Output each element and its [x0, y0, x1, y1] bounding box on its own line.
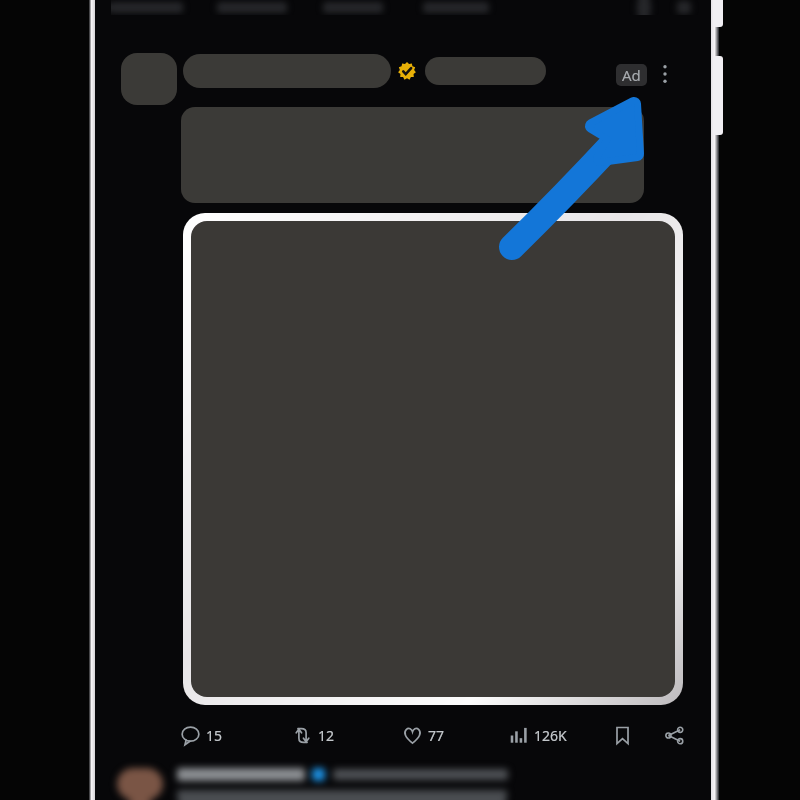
button[interactable]: Share [659, 720, 689, 750]
button[interactable]: Media image [191, 221, 675, 697]
button[interactable]: Profile photo [121, 53, 177, 105]
staticText: 12 [318, 726, 335, 745]
button[interactable]: More options [650, 59, 680, 89]
button[interactable]: 12 [293, 722, 335, 749]
button[interactable]: Ad [616, 64, 647, 86]
button[interactable]: 15 [181, 722, 223, 749]
staticText: 126K [534, 726, 567, 745]
staticText: 15 [206, 726, 223, 745]
staticText: 77 [428, 726, 445, 745]
button[interactable]: 77 [403, 722, 445, 749]
button[interactable]: 126K [509, 722, 567, 749]
button[interactable]: Bookmark [607, 720, 637, 750]
staticText: Ad [622, 65, 641, 85]
